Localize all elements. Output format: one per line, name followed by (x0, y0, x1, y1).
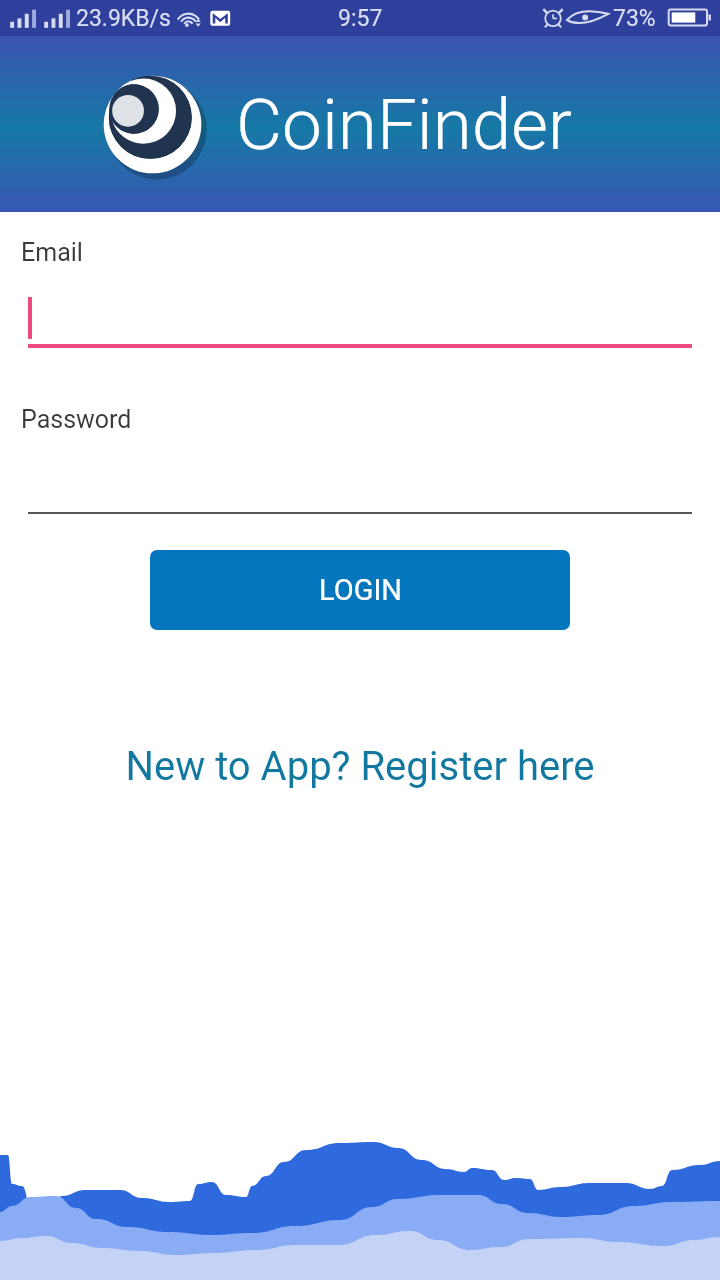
staticText: LOGIN (319, 573, 402, 607)
button[interactable]: LOGIN (150, 550, 570, 630)
staticText: Password (21, 405, 132, 434)
button[interactable] (0, 267, 720, 362)
staticText: 23.9KB/s (76, 5, 171, 32)
staticText: 9:57 (338, 5, 383, 32)
staticText: New to App? Register here (125, 743, 595, 790)
staticText: Email (21, 238, 83, 267)
button[interactable]: New to App? Register here (0, 743, 720, 790)
button[interactable] (0, 434, 720, 529)
staticText: CoinFinder (236, 83, 572, 166)
staticText: 73% (613, 5, 656, 32)
